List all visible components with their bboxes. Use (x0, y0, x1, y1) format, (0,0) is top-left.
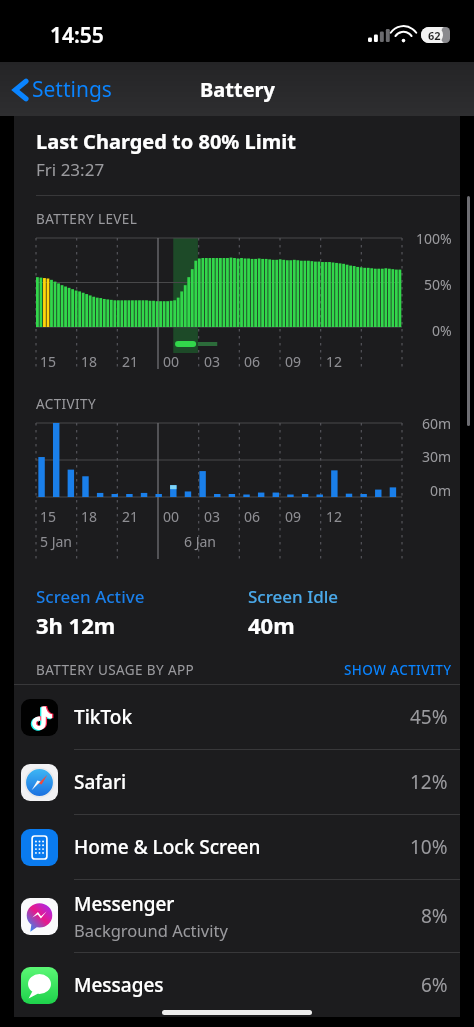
staticText: 50% (424, 275, 452, 294)
staticText: Last Charged to 80% Limit (36, 128, 296, 155)
staticText: 40m (248, 610, 295, 640)
staticText: Messenger (74, 891, 175, 917)
button[interactable]: SHOW ACTIVITY (344, 661, 452, 679)
staticText: Background Activity (74, 919, 228, 941)
staticText: 6% (421, 972, 448, 998)
staticText: TikTok (74, 704, 133, 730)
staticText: ACTIVITY (36, 395, 96, 413)
staticText: 12% (410, 769, 448, 795)
staticText: 30m (422, 447, 452, 466)
button[interactable]: Messages (14, 953, 460, 1017)
staticText: 8% (421, 903, 448, 929)
staticText: 21 (122, 352, 139, 371)
staticText: 14:55 (50, 21, 104, 50)
staticText: 6 Jan (184, 532, 216, 551)
staticText: 00 (163, 507, 180, 526)
staticText: Battery (200, 76, 275, 103)
staticText: 45% (410, 704, 448, 730)
staticText: 15 (40, 507, 57, 526)
staticText: 18 (81, 507, 98, 526)
staticText: BATTERY USAGE BY APP (36, 661, 195, 679)
staticText: 5 Jan (40, 532, 72, 551)
staticText: 18 (81, 352, 98, 371)
staticText: 21 (122, 507, 139, 526)
staticText: Settings (32, 75, 112, 104)
button[interactable]: Messenger (14, 880, 460, 953)
staticText: BATTERY LEVEL (36, 210, 138, 228)
staticText: Messages (74, 972, 164, 998)
staticText: 03 (204, 352, 221, 371)
staticText: 0% (432, 321, 452, 340)
staticText: 3h 12m (36, 610, 116, 640)
staticText: 03 (204, 507, 221, 526)
staticText: Home & Lock Screen (74, 834, 261, 860)
staticText: Safari (74, 769, 127, 795)
staticText: 06 (244, 507, 261, 526)
button[interactable]: Settings (10, 69, 116, 110)
staticText: SHOW ACTIVITY (344, 661, 452, 679)
button[interactable]: TikTok (14, 685, 460, 750)
staticText: 10% (410, 834, 448, 860)
staticText: 06 (244, 352, 261, 371)
staticText: 60m (422, 414, 452, 433)
staticText: 15 (40, 352, 57, 371)
staticText: Fri 23:27 (36, 158, 105, 181)
staticText: 00 (163, 352, 180, 371)
staticText: 0m (430, 481, 452, 500)
staticText: 62 (428, 28, 441, 43)
staticText: 09 (285, 352, 302, 371)
staticText: Screen Idle (248, 585, 339, 608)
staticText: 09 (285, 507, 302, 526)
button[interactable]: Safari (14, 750, 460, 815)
staticText: 12 (326, 352, 343, 371)
staticText: Screen Active (36, 585, 145, 608)
button[interactable]: Home & Lock Screen (14, 815, 460, 880)
staticText: 100% (416, 229, 452, 248)
staticText: 12 (326, 507, 343, 526)
